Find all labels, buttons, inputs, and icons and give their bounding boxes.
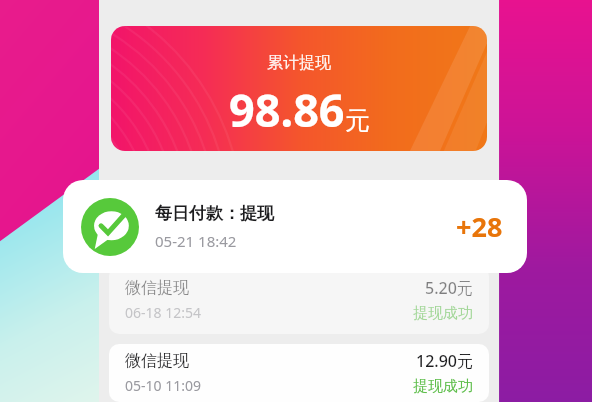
- staticText: 累计提现: [267, 53, 331, 73]
- staticText: 微信提现: [125, 278, 189, 298]
- button[interactable]: WeChat Pay: [63, 180, 527, 273]
- other: WeChat Pay: [81, 198, 139, 256]
- staticText: 05-10 11:09: [125, 376, 201, 395]
- staticText: 微信提现: [125, 351, 189, 371]
- staticText: 06-18 12:54: [125, 303, 201, 322]
- staticText: 5.20元: [425, 277, 473, 299]
- button[interactable]: 累计提现: [111, 26, 487, 151]
- staticText: 05-21 18:42: [155, 231, 237, 251]
- button[interactable]: 微信提现: [109, 266, 489, 334]
- staticText: 98.86: [229, 79, 345, 140]
- staticText: 每日付款：提现: [155, 203, 274, 224]
- staticText: 提现成功: [413, 377, 473, 396]
- staticText: 提现成功: [413, 304, 473, 323]
- staticText: +28: [456, 208, 503, 245]
- staticText: 12.90元: [416, 350, 473, 372]
- staticText: 元: [345, 105, 370, 136]
- button[interactable]: 微信提现: [109, 344, 489, 402]
